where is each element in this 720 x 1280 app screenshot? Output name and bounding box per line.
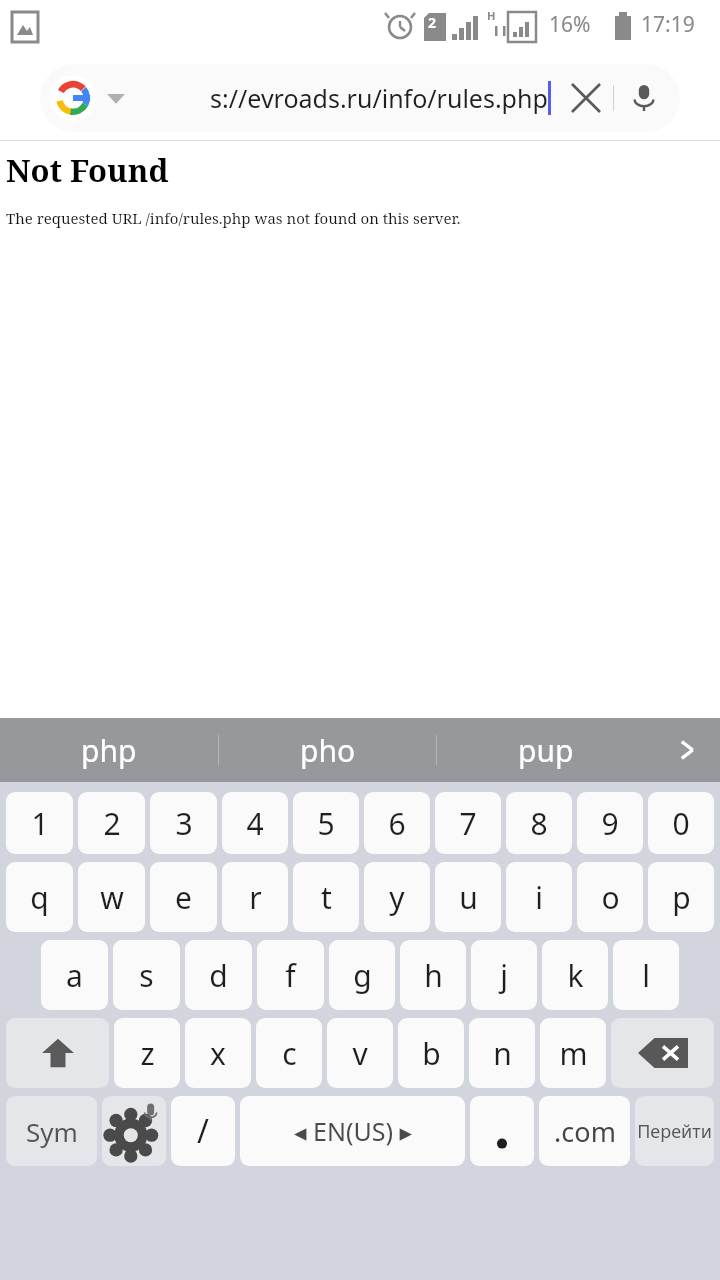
staticText: w <box>100 877 124 918</box>
button[interactable]: e <box>150 862 217 932</box>
staticText: ◂ EN(US) ▸ <box>294 1114 412 1148</box>
button[interactable]: Search engine <box>50 75 96 121</box>
staticText: i <box>535 877 543 918</box>
button[interactable]: Shift <box>6 1018 109 1088</box>
staticText: a <box>66 955 83 996</box>
button[interactable]: Backspace <box>611 1018 714 1088</box>
button[interactable]: 8 <box>506 792 572 854</box>
button[interactable]: q <box>6 862 73 932</box>
button[interactable]: Dropdown <box>102 84 130 112</box>
button[interactable]: m <box>540 1018 606 1088</box>
button[interactable]: v <box>327 1018 393 1088</box>
staticText: p <box>672 877 691 918</box>
staticText: c <box>282 1033 297 1074</box>
staticText: Sym <box>26 1114 78 1149</box>
staticText: k <box>567 955 584 996</box>
staticText: 4 <box>246 803 264 844</box>
staticText: 8 <box>530 803 548 844</box>
button[interactable]: .com <box>539 1096 630 1166</box>
staticText: Not Found <box>6 149 169 191</box>
staticText: 0 <box>672 803 690 844</box>
staticText: e <box>175 877 192 918</box>
staticText: z <box>140 1033 155 1074</box>
staticText: r <box>249 877 262 918</box>
button[interactable]: w <box>78 862 145 932</box>
button[interactable]: n <box>469 1018 535 1088</box>
button[interactable]: g <box>329 940 395 1010</box>
button[interactable]: php <box>0 718 218 782</box>
staticText: 17:19 <box>641 10 695 39</box>
button[interactable]: Clear <box>559 71 613 125</box>
button[interactable]: t <box>293 862 359 932</box>
staticText: v <box>352 1033 368 1074</box>
staticText: 2 <box>428 13 437 32</box>
staticText: 16% <box>549 10 591 39</box>
button[interactable]: / <box>171 1096 235 1166</box>
staticText: 9 <box>601 803 619 844</box>
staticText: / <box>197 1109 209 1153</box>
staticText: s <box>139 955 154 996</box>
staticText: The requested URL /info/rules.php was no… <box>6 208 461 228</box>
button[interactable]: 2 <box>78 792 145 854</box>
staticText: 7 <box>459 803 477 844</box>
button[interactable]: s <box>113 940 180 1010</box>
button[interactable]: k <box>542 940 608 1010</box>
button[interactable]: 5 <box>293 792 359 854</box>
button[interactable]: 4 <box>222 792 288 854</box>
button[interactable]: Search engine <box>40 64 680 132</box>
button[interactable]: 9 <box>577 792 643 854</box>
button[interactable]: pup <box>437 718 654 782</box>
button[interactable]: pho <box>219 718 436 782</box>
button[interactable]: 6 <box>364 792 430 854</box>
staticText: f <box>285 955 296 996</box>
staticText: h <box>424 955 443 996</box>
staticText: j <box>500 955 508 996</box>
staticText: m <box>559 1033 588 1074</box>
staticText: Перейти <box>637 1119 712 1144</box>
button[interactable]: b <box>398 1018 464 1088</box>
button[interactable]: 7 <box>435 792 501 854</box>
button[interactable]: Voice search <box>614 68 674 128</box>
staticText: H <box>487 8 496 23</box>
staticText: 5 <box>317 803 335 844</box>
button[interactable]: z <box>114 1018 180 1088</box>
staticText: pup <box>518 730 574 771</box>
button[interactable]: 1 <box>6 792 73 854</box>
button[interactable]: h <box>400 940 466 1010</box>
button[interactable]: 3 <box>150 792 217 854</box>
button[interactable]: d <box>185 940 252 1010</box>
button[interactable]: Period <box>470 1096 534 1166</box>
button[interactable]: p <box>648 862 714 932</box>
button[interactable]: More suggestions <box>654 718 720 782</box>
staticText: q <box>30 877 49 918</box>
button[interactable]: o <box>577 862 643 932</box>
button[interactable]: j <box>471 940 537 1010</box>
staticText: 1 <box>31 803 49 844</box>
staticText: u <box>459 877 478 918</box>
button[interactable]: l <box>613 940 679 1010</box>
staticText: s://evroads.ru/info/rules.php <box>210 81 548 115</box>
button[interactable]: a <box>41 940 108 1010</box>
button[interactable]: x <box>185 1018 251 1088</box>
button[interactable]: u <box>435 862 501 932</box>
button[interactable]: i <box>506 862 572 932</box>
staticText: d <box>209 955 228 996</box>
button[interactable]: Settings <box>102 1096 166 1166</box>
staticText: l <box>642 955 650 996</box>
button[interactable]: r <box>222 862 288 932</box>
staticText: n <box>493 1033 512 1074</box>
button[interactable]: Перейти <box>635 1096 714 1166</box>
staticText: x <box>210 1033 226 1074</box>
button[interactable]: f <box>257 940 324 1010</box>
staticText: 2 <box>103 803 121 844</box>
button[interactable]: c <box>256 1018 322 1088</box>
staticText: 6 <box>388 803 406 844</box>
button[interactable]: y <box>364 862 430 932</box>
button[interactable]: 0 <box>648 792 714 854</box>
staticText: php <box>81 730 137 771</box>
button[interactable]: Sym <box>6 1096 97 1166</box>
staticText: y <box>389 877 405 918</box>
button[interactable]: ◂ EN(US) ▸ <box>240 1096 465 1166</box>
staticText: b <box>422 1033 441 1074</box>
staticText: 3 <box>175 803 193 844</box>
